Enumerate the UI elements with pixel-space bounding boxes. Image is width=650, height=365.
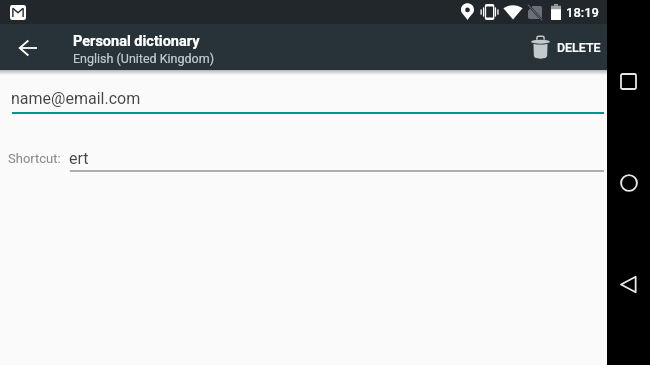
staticText: ert <box>69 149 89 168</box>
staticText: name@email.com <box>11 89 141 108</box>
staticText: 18:19 <box>566 5 599 20</box>
button[interactable]: Back <box>607 263 650 306</box>
staticText: DELETE <box>557 40 601 55</box>
button[interactable]: Home <box>607 161 650 204</box>
staticText: English (United Kingdom) <box>73 51 215 66</box>
button[interactable]: Recent apps <box>607 60 650 103</box>
button[interactable]: DELETE <box>521 24 607 70</box>
button[interactable]: Navigate up <box>10 36 46 60</box>
staticText: Personal dictionary <box>73 33 200 50</box>
staticText: Shortcut: <box>8 151 61 166</box>
